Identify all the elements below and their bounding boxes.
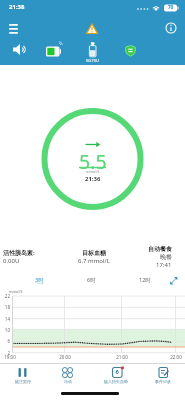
button[interactable] (82, 41, 103, 61)
staticText: 活动 (64, 379, 72, 384)
staticText: 12时 (139, 276, 151, 284)
staticText: 21:38 (9, 3, 25, 11)
button[interactable] (4, 19, 24, 37)
staticText: 21:00 (112, 354, 132, 360)
button[interactable] (121, 41, 141, 58)
button[interactable] (161, 19, 181, 37)
staticText: 17:41 (156, 261, 172, 269)
button[interactable]: 事件记录 (140, 367, 185, 391)
button[interactable]: 输入指尖血糖 (92, 367, 139, 391)
staticText: 10 (0, 327, 10, 333)
staticText: 输入指尖血糖 (104, 379, 128, 384)
button[interactable]: 活动 (46, 367, 89, 391)
staticText: 19:00 (0, 354, 20, 360)
staticText: 6.7 mmol/L (78, 257, 110, 265)
staticText: 0.00U (3, 257, 20, 265)
staticText: 2 (0, 350, 10, 356)
staticText: 60.70U (76, 58, 109, 63)
staticText: 5.5 (79, 148, 107, 170)
staticText: 活性胰岛素: (3, 249, 35, 257)
staticText: 事件记录 (155, 379, 171, 384)
staticText: 目标血糖 (82, 249, 106, 257)
button[interactable]: 12时 (133, 274, 157, 286)
staticText: 14 (0, 316, 10, 322)
staticText: 晚餐 (160, 253, 172, 261)
staticText: mmol/L (86, 169, 100, 174)
staticText: mmol/L (9, 289, 23, 294)
button[interactable]: 3时 (28, 274, 50, 286)
button[interactable] (8, 41, 28, 58)
button[interactable]: 输注暂停 (1, 367, 44, 391)
staticText: 输注暂停 (15, 379, 31, 384)
staticText: 6 (0, 338, 10, 344)
staticText: 6时 (87, 276, 96, 284)
staticText: 70 (164, 4, 177, 11)
button[interactable] (166, 274, 182, 288)
staticText: 22:00 (166, 354, 185, 360)
staticText: 自动餐食 (148, 245, 172, 253)
button[interactable] (42, 41, 64, 58)
button[interactable]: 6时 (80, 274, 102, 286)
staticText: 18 (0, 304, 10, 310)
staticText: 21:36 (85, 175, 101, 183)
staticText: 3时 (35, 276, 44, 284)
staticText: 22 (0, 293, 10, 299)
staticText: 20:00 (55, 354, 75, 360)
